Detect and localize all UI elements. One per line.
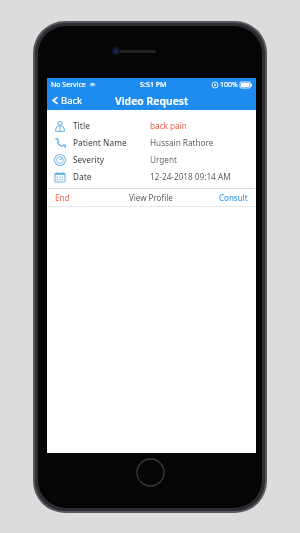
button[interactable]: Patient Name: Hussain Rathore [48, 134, 255, 151]
staticText: Date [73, 171, 92, 182]
button[interactable]: Consult [190, 189, 255, 206]
staticText: Video Request [115, 94, 189, 108]
staticText: Severity [73, 154, 105, 165]
button[interactable]: Date [48, 168, 255, 185]
button[interactable]: End [48, 189, 112, 206]
staticText: 100% [220, 80, 238, 90]
staticText: Consult [219, 192, 248, 203]
staticText: 5:51 PM [140, 80, 167, 90]
staticText: Urgent [150, 154, 177, 165]
staticText: Hussain Rathore [150, 137, 214, 148]
button[interactable]: View Profile [112, 189, 190, 206]
button[interactable]: Severity: Urgent [48, 151, 255, 168]
staticText: Patient Name [73, 137, 127, 148]
staticText: Back [61, 94, 83, 107]
staticText: View Profile [129, 192, 173, 203]
staticText: No Service [51, 80, 86, 90]
staticText: Title [73, 120, 90, 131]
staticText: back pain [150, 120, 187, 131]
button[interactable]: Back [47, 92, 89, 109]
button[interactable]: Title: back pain [48, 117, 255, 134]
staticText: 12-24-2018 09:14 AM [150, 171, 231, 182]
staticText: End [55, 192, 70, 203]
